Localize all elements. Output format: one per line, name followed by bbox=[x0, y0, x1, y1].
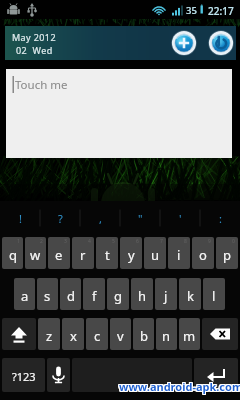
staticText: www.android-apk.com bbox=[120, 380, 240, 395]
staticText: s bbox=[44, 287, 51, 305]
staticText: ? bbox=[58, 211, 63, 226]
button[interactable]: Undo bbox=[208, 30, 234, 56]
staticText: www.android-apk.com bbox=[118, 380, 240, 395]
button[interactable]: Enter bbox=[194, 358, 238, 392]
staticText: 9 bbox=[208, 238, 211, 245]
staticText: i bbox=[177, 246, 181, 264]
staticText: ' bbox=[179, 211, 182, 226]
button[interactable]: " bbox=[120, 201, 160, 235]
staticText: z bbox=[46, 327, 53, 345]
staticText: , bbox=[99, 211, 102, 226]
button[interactable]: w bbox=[25, 237, 46, 269]
staticText: 6 bbox=[136, 238, 139, 245]
staticText: c bbox=[94, 327, 101, 345]
staticText: 5 bbox=[112, 238, 115, 245]
staticText: 4 bbox=[88, 238, 91, 245]
button[interactable]: Voice input bbox=[47, 358, 70, 392]
staticText: 35 bbox=[186, 4, 197, 17]
staticText: May 2012 bbox=[12, 31, 56, 43]
staticText: 8 bbox=[184, 238, 187, 245]
staticText: o bbox=[199, 246, 207, 264]
button[interactable]: e bbox=[48, 237, 70, 269]
staticText: e bbox=[55, 246, 63, 264]
staticText: www.android-apk.com bbox=[120, 379, 240, 394]
staticText: f bbox=[92, 287, 97, 305]
button[interactable]: z bbox=[38, 318, 60, 350]
button[interactable]: x bbox=[62, 318, 84, 350]
button[interactable]: , bbox=[80, 201, 120, 235]
staticText: n bbox=[162, 327, 171, 345]
staticText: h bbox=[138, 287, 147, 305]
button[interactable]: v bbox=[110, 318, 131, 350]
staticText: u bbox=[151, 246, 160, 264]
staticText: 0 bbox=[232, 238, 235, 245]
button[interactable]: m bbox=[179, 318, 200, 350]
button[interactable]: g bbox=[107, 278, 129, 310]
staticText: k bbox=[187, 287, 194, 305]
button[interactable]: ?123 bbox=[2, 358, 45, 392]
staticText: v bbox=[117, 327, 124, 345]
staticText: q bbox=[9, 246, 17, 264]
staticText: ! bbox=[19, 211, 22, 226]
button[interactable]: c bbox=[86, 318, 108, 350]
button[interactable]: k bbox=[179, 278, 201, 310]
staticText: b bbox=[140, 327, 148, 345]
staticText: www.android-apk.com bbox=[118, 378, 240, 393]
staticText: p bbox=[223, 246, 231, 264]
button[interactable]: : bbox=[200, 201, 240, 235]
button[interactable]: t bbox=[96, 237, 118, 269]
button[interactable]: i bbox=[168, 237, 190, 269]
staticText: 7 bbox=[160, 238, 163, 245]
staticText: 2 bbox=[40, 238, 43, 245]
button[interactable]: Touch me bbox=[6, 69, 232, 158]
staticText: r bbox=[80, 246, 86, 264]
staticText: d bbox=[67, 287, 75, 305]
button[interactable]: Add event bbox=[171, 30, 197, 56]
staticText: " bbox=[138, 211, 143, 226]
button[interactable]: f bbox=[83, 278, 105, 310]
button[interactable]: h bbox=[131, 278, 153, 310]
staticText: w bbox=[30, 246, 41, 264]
button[interactable]: May 2012 bbox=[5, 26, 236, 60]
staticText: www.android-apk.com bbox=[119, 380, 240, 395]
button[interactable]: b bbox=[133, 318, 154, 350]
button[interactable]: Space bbox=[72, 358, 192, 392]
staticText: 3 bbox=[64, 238, 67, 245]
button[interactable]: r bbox=[72, 237, 94, 269]
staticText: www.android-apk.com bbox=[118, 379, 240, 394]
button[interactable]: d bbox=[60, 278, 81, 310]
button[interactable]: j bbox=[155, 278, 177, 310]
button[interactable]: y bbox=[120, 237, 142, 269]
button[interactable]: Backspace bbox=[202, 318, 238, 350]
staticText: www.android-apk.com bbox=[120, 378, 240, 393]
staticText: t bbox=[105, 246, 110, 264]
button[interactable]: p bbox=[216, 237, 238, 269]
staticText: 02 Wed bbox=[16, 44, 53, 56]
button[interactable]: ' bbox=[160, 201, 200, 235]
button[interactable]: s bbox=[37, 278, 58, 310]
staticText: ?123 bbox=[12, 369, 36, 384]
staticText: www.android-apk.com bbox=[119, 379, 240, 394]
staticText: Touch me bbox=[15, 77, 68, 93]
button[interactable]: q bbox=[2, 237, 23, 269]
button[interactable]: ! bbox=[0, 201, 40, 235]
button[interactable]: u bbox=[144, 237, 166, 269]
button[interactable]: a bbox=[14, 278, 35, 310]
staticText: j bbox=[164, 287, 168, 305]
button[interactable]: o bbox=[192, 237, 214, 269]
staticText: y bbox=[128, 246, 135, 264]
staticText: 22:17 bbox=[208, 4, 234, 18]
button[interactable]: Shift bbox=[2, 318, 36, 350]
staticText: : bbox=[219, 211, 222, 226]
staticText: x bbox=[70, 327, 77, 345]
staticText: 1 bbox=[17, 238, 20, 245]
staticText: m bbox=[183, 327, 196, 345]
staticText: www.android-apk.com bbox=[119, 378, 240, 393]
staticText: a bbox=[21, 287, 29, 305]
button[interactable]: n bbox=[156, 318, 177, 350]
staticText: g bbox=[114, 287, 122, 305]
staticText: l bbox=[212, 287, 216, 305]
button[interactable]: ? bbox=[40, 201, 80, 235]
button[interactable]: l bbox=[203, 278, 225, 310]
